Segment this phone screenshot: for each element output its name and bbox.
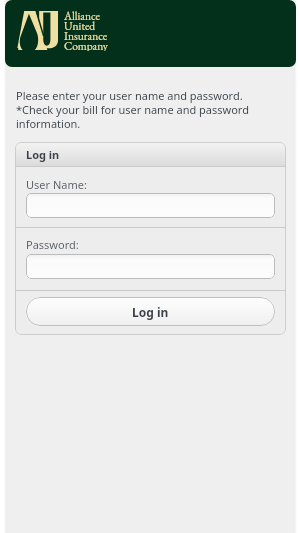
staticText: Password: bbox=[26, 237, 79, 252]
staticText: Log in bbox=[26, 147, 60, 162]
staticText: United bbox=[64, 18, 96, 31]
staticText: Please enter your user name and password… bbox=[16, 88, 249, 131]
staticText: User Name: bbox=[26, 177, 87, 192]
button[interactable]: Log in bbox=[26, 297, 275, 326]
staticText: Log in bbox=[132, 304, 169, 320]
staticText: Insurance bbox=[64, 28, 108, 41]
button[interactable] bbox=[26, 193, 275, 218]
staticText: Alliance bbox=[64, 8, 100, 21]
other: Alliance United Insurance Company logo bbox=[17, 11, 58, 50]
staticText: Company bbox=[64, 38, 108, 51]
button[interactable] bbox=[26, 254, 275, 279]
